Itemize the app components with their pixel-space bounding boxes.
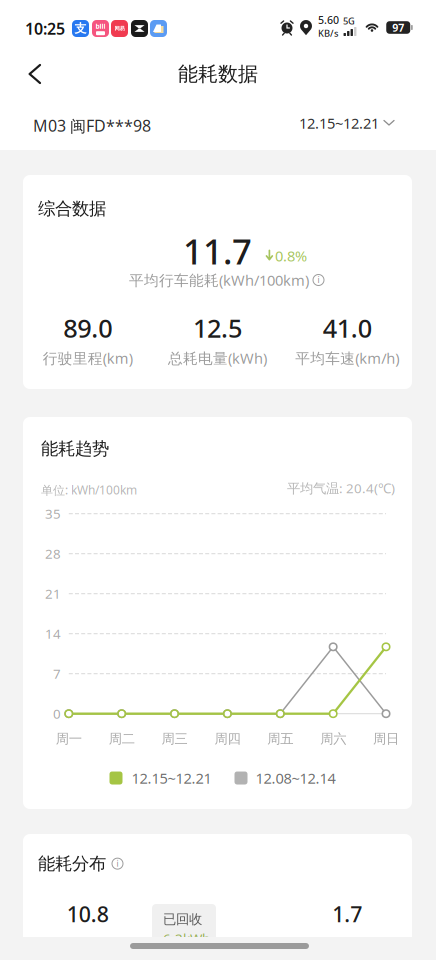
staticText: 周一 [56,730,82,747]
staticText: i [317,275,319,285]
staticText: 周六 [320,730,346,747]
staticText: KB/s [318,27,339,39]
staticText: 已回收 [163,911,202,927]
staticText: 10:25 [25,18,65,39]
staticText: 周三 [161,730,187,747]
staticText: 89.0 [63,311,112,345]
staticText: 10.8 [67,900,109,928]
staticText: 平均车速(km/h) [295,348,399,368]
staticText: 支 [74,21,86,36]
staticText: 12.15~12.21 [131,768,211,788]
staticText: 网易 [114,25,124,32]
staticText: 能耗分布 [38,853,106,874]
button[interactable]: 12.15~12.21 [299,109,395,137]
staticText: 5G [343,15,355,27]
staticText: 总耗电量(kWh) [168,348,267,368]
staticText: 35 [45,505,61,522]
staticText: 7 [53,665,61,682]
staticText: 5.60 [318,13,339,27]
staticText: 6.3kWh [163,929,210,947]
staticText: 周日 [373,730,399,747]
staticText: i [116,858,118,869]
staticText: 能耗数据 [178,62,258,86]
staticText: 21 [45,585,61,602]
staticText: 12.15~12.21 [299,113,379,133]
staticText: bili [95,22,105,31]
staticText: 1.7 [332,900,362,928]
staticText: 周二 [109,730,135,747]
staticText: 周四 [214,730,240,747]
staticText: 11.7 [183,228,252,274]
staticText: 0.8% [275,246,307,265]
staticText: 能耗趋势 [41,438,109,459]
staticText: M03 闽FD***98 [33,115,151,136]
staticText: 41.0 [323,311,372,345]
staticText: 平均气温: 20.4(℃) [287,479,395,497]
staticText: 28 [45,545,61,562]
staticText: 行驶里程(km) [43,348,133,368]
staticText: 综合数据 [38,198,106,219]
staticText: 12.5 [193,311,242,345]
staticText: 97 [392,20,404,35]
staticText: 12.08~12.14 [255,768,335,788]
staticText: 周五 [267,730,293,747]
button[interactable]: Back [13,52,57,96]
staticText: 单位: kWh/100km [41,482,137,498]
staticText: 平均行车能耗(kWh/100km) [129,270,309,290]
staticText: 14 [45,625,61,642]
staticText: 0 [53,705,61,722]
